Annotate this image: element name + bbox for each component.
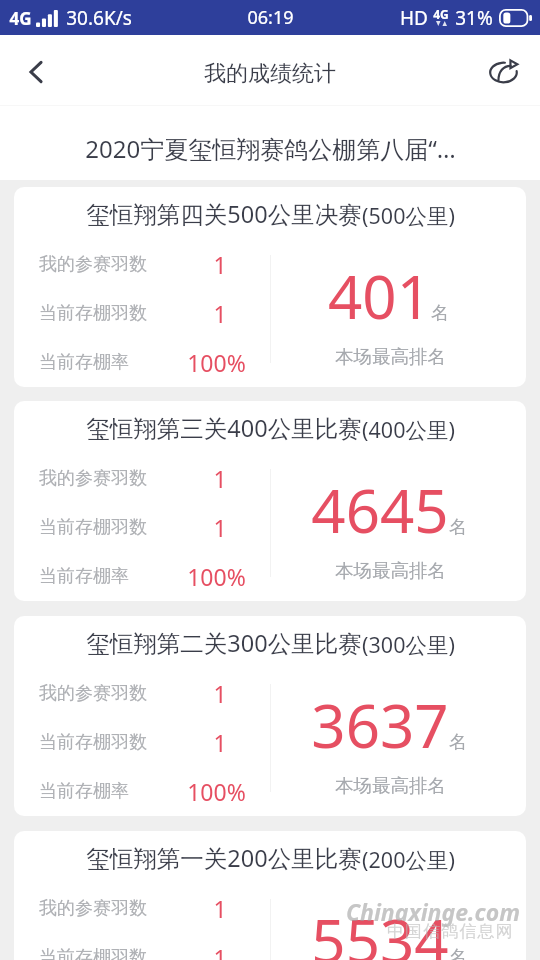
button[interactable]: Back bbox=[8, 44, 64, 100]
staticText: 当前存棚羽数 bbox=[39, 731, 147, 754]
staticText: 4645 bbox=[311, 469, 449, 551]
staticText: 当前存棚羽数 bbox=[39, 946, 147, 960]
staticText: 1 bbox=[213, 463, 227, 494]
staticText: 06:19 bbox=[247, 5, 294, 30]
staticText: 3637 bbox=[311, 684, 449, 766]
staticText: 100% bbox=[187, 776, 246, 807]
staticText: 401 bbox=[328, 255, 431, 337]
staticText: 1 bbox=[213, 727, 227, 758]
staticText: 1 bbox=[213, 249, 227, 280]
staticText: 本场最高排名 bbox=[335, 774, 446, 797]
staticText: 4G bbox=[433, 6, 449, 22]
staticText: 玺恒翔第一关200公里比赛 bbox=[86, 842, 362, 874]
staticText: HD bbox=[400, 5, 428, 31]
staticText: (300公里) bbox=[362, 630, 455, 659]
button[interactable]: Share bbox=[476, 44, 532, 100]
staticText: 名 bbox=[449, 516, 467, 539]
staticText: 名 bbox=[449, 946, 467, 960]
staticText: 玺恒翔第三关400公里比赛 bbox=[86, 412, 362, 444]
staticText: 当前存棚羽数 bbox=[39, 516, 147, 539]
staticText: 我的参赛羽数 bbox=[39, 467, 147, 490]
staticText: (200公里) bbox=[362, 845, 455, 874]
staticText: 名 bbox=[431, 302, 449, 325]
staticText: 1 bbox=[213, 942, 227, 960]
staticText: Chinaxinge.com bbox=[346, 896, 520, 927]
staticText: 玺恒翔第二关300公里比赛 bbox=[86, 627, 362, 659]
staticText: (400公里) bbox=[362, 415, 455, 444]
staticText: 1 bbox=[213, 893, 227, 924]
staticText: 我的成绩统计 bbox=[204, 60, 336, 88]
staticText: 1 bbox=[213, 678, 227, 709]
staticText: 当前存棚率 bbox=[39, 351, 129, 374]
staticText: 1 bbox=[213, 512, 227, 543]
staticText: 中国信鸽信息网 bbox=[387, 921, 514, 942]
staticText: 我的参赛羽数 bbox=[39, 682, 147, 705]
staticText: 我的参赛羽数 bbox=[39, 897, 147, 920]
staticText: 1 bbox=[213, 298, 227, 329]
staticText: 2020宁夏玺恒翔赛鸽公棚第八届“… bbox=[85, 132, 456, 165]
staticText: 玺恒翔第四关500公里决赛 bbox=[86, 198, 362, 230]
staticText: 4G bbox=[9, 7, 32, 30]
staticText: 当前存棚率 bbox=[39, 565, 129, 588]
staticText: 100% bbox=[187, 347, 246, 378]
staticText: 本场最高排名 bbox=[335, 345, 446, 368]
staticText: 31% bbox=[455, 5, 493, 31]
staticText: 名 bbox=[449, 731, 467, 754]
button[interactable]: 玺恒翔第四关500公里决赛 bbox=[14, 187, 526, 387]
staticText: 100% bbox=[187, 561, 246, 592]
staticText: (500公里) bbox=[362, 201, 455, 230]
staticText: 当前存棚率 bbox=[39, 780, 129, 803]
button[interactable]: 玺恒翔第一关200公里比赛 bbox=[14, 831, 526, 960]
staticText: 5534 bbox=[311, 899, 449, 960]
staticText: 30.6K/s bbox=[66, 5, 132, 31]
button[interactable]: 玺恒翔第三关400公里比赛 bbox=[14, 401, 526, 601]
button[interactable]: 玺恒翔第二关300公里比赛 bbox=[14, 616, 526, 816]
staticText: 我的参赛羽数 bbox=[39, 253, 147, 276]
staticText: 当前存棚羽数 bbox=[39, 302, 147, 325]
staticText: 本场最高排名 bbox=[335, 559, 446, 582]
